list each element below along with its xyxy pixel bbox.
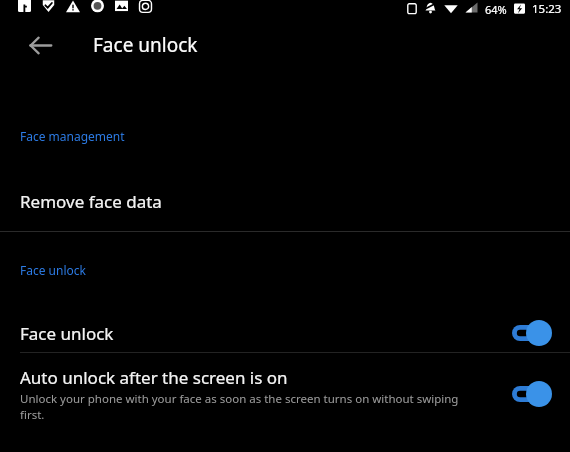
button[interactable]: Toggle on	[512, 320, 552, 346]
staticText: Remove face data	[20, 190, 162, 213]
staticText: Face unlock	[20, 262, 86, 278]
staticText: Face unlock	[93, 32, 198, 58]
staticText: Unlock your phone with your face as soon…	[20, 391, 475, 422]
staticText: 64%	[485, 2, 507, 17]
button[interactable]: Auto unlock after the screen is on	[0, 366, 570, 422]
staticText: 15:23	[532, 1, 562, 17]
button[interactable]: Back	[20, 25, 60, 65]
staticText: Face management	[20, 128, 125, 144]
button[interactable]: Toggle on	[512, 381, 552, 407]
staticText: Auto unlock after the screen is on	[20, 366, 288, 389]
button[interactable]: Face unlock	[0, 320, 570, 346]
staticText: Face unlock	[20, 322, 114, 345]
button[interactable]: Remove face data	[0, 188, 570, 214]
